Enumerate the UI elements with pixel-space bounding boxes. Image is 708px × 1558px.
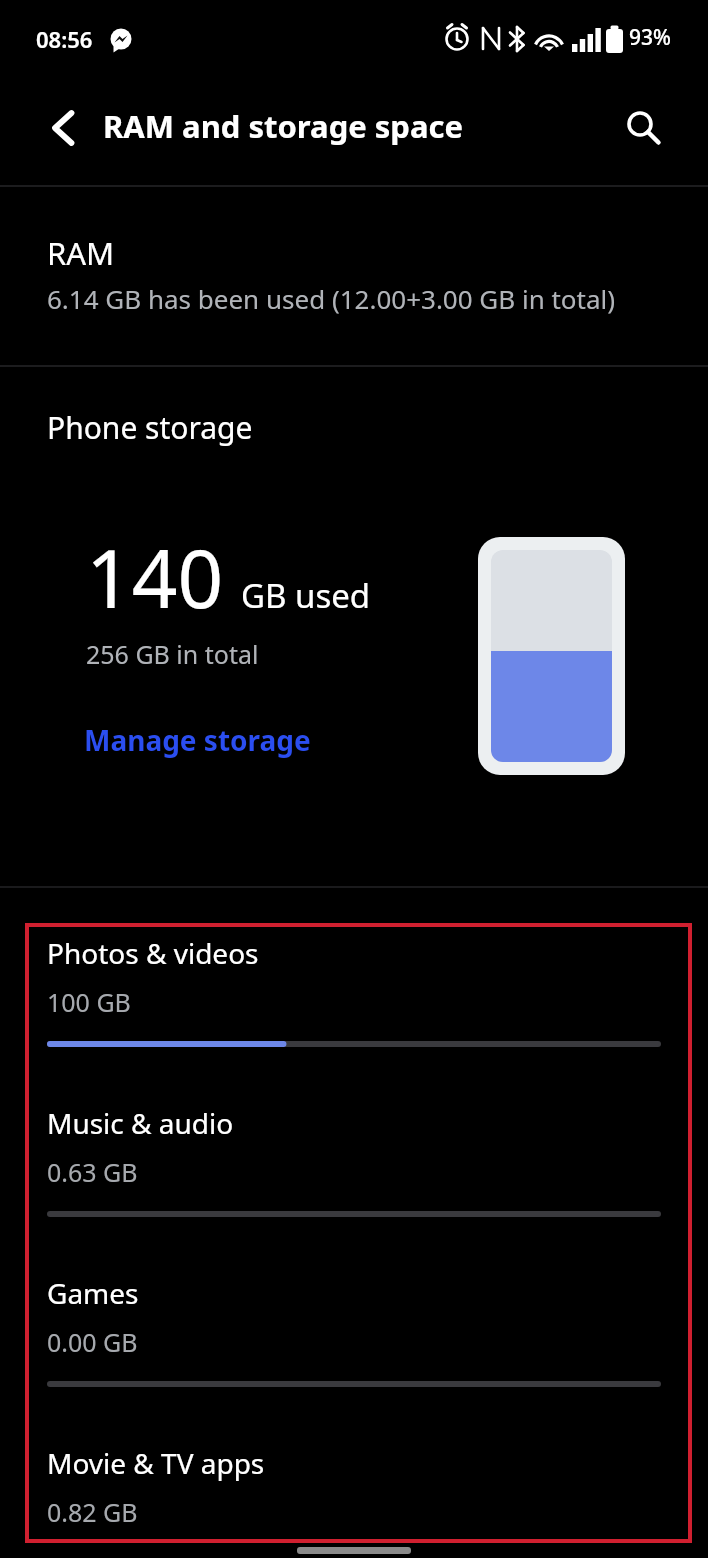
button[interactable]: Games: [0, 1274, 708, 1440]
staticText: GB used: [241, 573, 371, 618]
staticText: Music & audio: [47, 1104, 234, 1142]
staticText: 0.63 GB: [47, 1155, 138, 1189]
button[interactable]: Music & audio: [0, 1104, 708, 1270]
button[interactable]: [40, 102, 92, 154]
staticText: Games: [47, 1274, 139, 1312]
staticText: Movie & TV apps: [47, 1444, 265, 1482]
button[interactable]: Movie & TV apps: [0, 1444, 708, 1558]
staticText: 0.00 GB: [47, 1325, 138, 1359]
staticText: 140: [86, 522, 224, 631]
staticText: 256 GB in total: [86, 637, 259, 671]
staticText: Phone storage: [47, 407, 253, 448]
staticText: Photos & videos: [47, 934, 259, 972]
button[interactable]: RAM: [0, 187, 708, 365]
staticText: 0.82 GB: [47, 1495, 138, 1529]
staticText: RAM: [47, 232, 115, 274]
staticText: 08:56: [36, 24, 93, 54]
button[interactable]: [614, 98, 670, 154]
button[interactable]: Photos & videos: [0, 934, 708, 1100]
staticText: 6.14 GB has been used (12.00+3.00 GB in …: [47, 281, 616, 316]
staticText: RAM and storage space: [103, 105, 464, 147]
button[interactable]: Manage storage: [84, 721, 311, 759]
staticText: 93%: [629, 23, 671, 52]
staticText: Manage storage: [84, 721, 311, 759]
staticText: 100 GB: [47, 985, 131, 1019]
